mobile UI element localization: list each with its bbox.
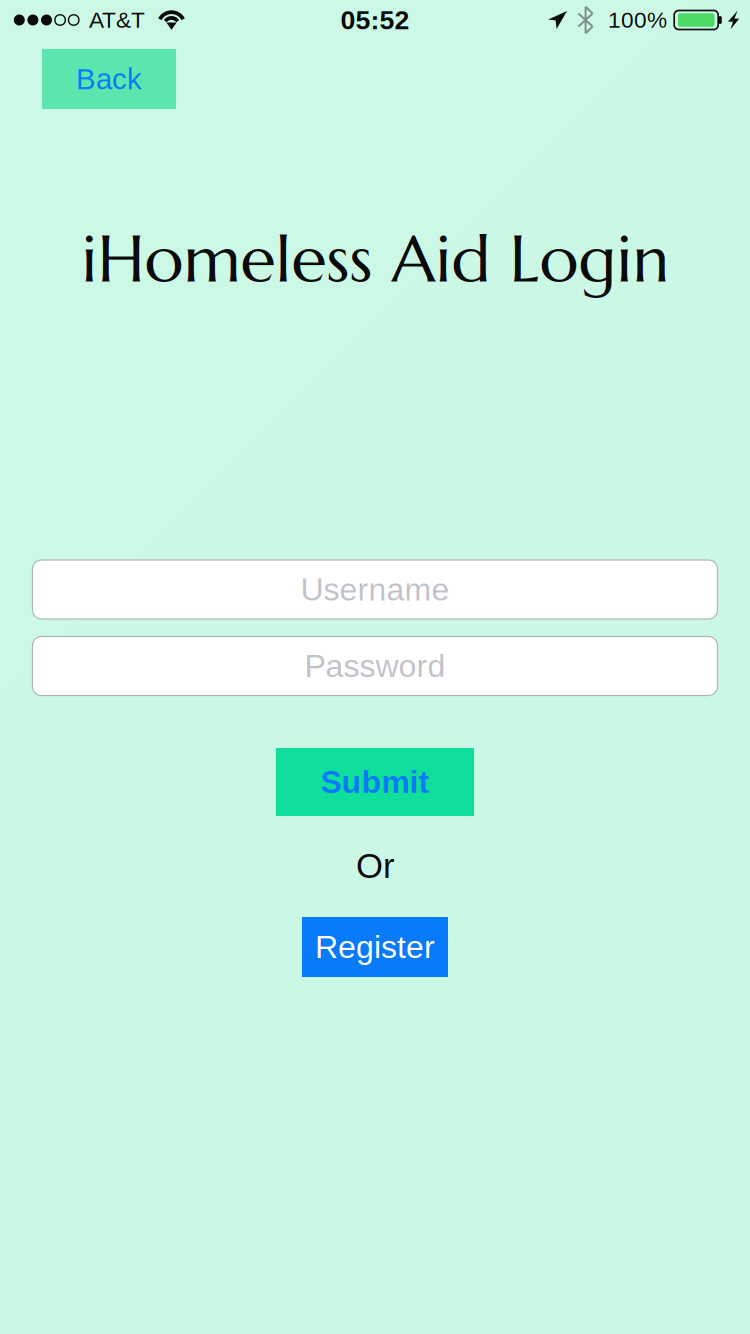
staticText: Password [304,648,445,684]
staticText: 100% [608,7,667,33]
staticText: 05:52 [340,5,409,35]
staticText: Submit [320,764,429,800]
staticText: Back [76,63,142,95]
staticText: Or [356,847,395,885]
staticText: iHomeless Aid Login [81,218,669,300]
button[interactable]: Register [302,917,448,977]
button[interactable]: Submit [276,748,474,816]
staticText: Username [300,572,449,607]
staticText: AT&T [89,7,145,33]
staticText: Register [315,929,435,965]
button[interactable]: Back [42,49,176,109]
